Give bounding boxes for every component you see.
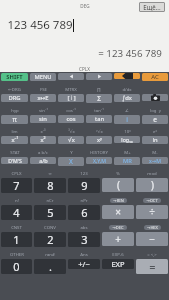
staticText: x↔E <box>37 94 49 102</box>
button[interactable]: Σ <box>86 94 112 103</box>
staticText: EXP <box>111 259 125 269</box>
staticText: →HEX <box>147 225 158 230</box>
button[interactable]: 9 <box>68 178 100 193</box>
staticText: sin⁻¹ <box>39 107 48 113</box>
button[interactable]: X,Y,M <box>86 157 112 164</box>
button[interactable]: x↔E <box>30 94 56 102</box>
staticText: Ans <box>80 251 88 257</box>
button[interactable]: ln <box>142 136 168 144</box>
button[interactable]: 2 <box>34 232 66 247</box>
staticText: MTRX <box>65 86 77 92</box>
button[interactable]: π <box>1 115 28 124</box>
button[interactable]: x⁻¹ <box>1 136 28 144</box>
staticText: HISTORY <box>90 149 108 155</box>
button[interactable]: log₁₀ <box>114 136 140 143</box>
button[interactable]: tan <box>86 115 112 123</box>
staticText: + <box>115 232 121 246</box>
button[interactable]: 5 <box>34 205 66 220</box>
staticText: cos⁻¹ <box>66 107 76 113</box>
button[interactable]: 7 <box>1 178 32 193</box>
staticText: d/dx <box>122 86 132 92</box>
staticText: CPLX <box>79 66 90 72</box>
staticText: x→M <box>149 157 161 164</box>
button[interactable]: x² <box>30 136 56 144</box>
staticText: lim <box>11 128 18 134</box>
button[interactable]: ∫dx <box>114 94 140 102</box>
staticText: 4 <box>13 205 20 220</box>
button[interactable]: Cursor left <box>58 73 84 80</box>
staticText: M+ <box>124 149 131 155</box>
button[interactable]: MR <box>114 157 140 165</box>
button[interactable]: 1 <box>1 232 32 247</box>
button[interactable]: 0 <box>1 259 32 274</box>
staticText: STAT <box>10 149 20 155</box>
staticText: x⁻³ <box>40 128 46 134</box>
button[interactable]: 6 <box>68 205 100 220</box>
staticText: ∠ <box>125 108 129 113</box>
staticText: xʸ <box>97 136 102 144</box>
button[interactable]: ( <box>102 178 134 192</box>
button[interactable]: MENU <box>30 73 56 81</box>
button[interactable]: Camera <box>142 94 168 101</box>
staticText: π <box>12 115 17 124</box>
staticText: eˣ <box>153 128 157 134</box>
button[interactable]: AC <box>142 73 168 81</box>
staticText: × <box>115 205 121 219</box>
button[interactable]: − <box>136 232 168 246</box>
staticText: ( <box>117 178 120 192</box>
button[interactable]: ) <box>136 178 168 192</box>
staticText: 10ˣ <box>124 128 131 134</box>
staticText: nPr <box>80 197 88 203</box>
button[interactable]: i <box>114 115 140 124</box>
button[interactable]: xʸ <box>86 136 112 144</box>
staticText: MR <box>123 157 132 165</box>
staticText: 3 <box>81 232 88 247</box>
staticText: ³√x <box>68 128 75 134</box>
button[interactable]: DRG <box>1 94 28 102</box>
staticText: Σ <box>97 94 101 103</box>
staticText: SHIFT <box>6 73 23 81</box>
button[interactable]: e <box>142 115 168 124</box>
staticText: 8 <box>47 178 54 193</box>
staticText: Y <box>70 149 73 155</box>
button[interactable]: SHIFT <box>1 73 28 81</box>
button[interactable]: x→M <box>142 157 168 164</box>
staticText: X,Y,M <box>93 157 106 164</box>
staticText: − <box>149 232 155 246</box>
button[interactable]: √x <box>58 136 84 144</box>
staticText: CONV <box>44 224 56 230</box>
button[interactable]: cos <box>58 115 84 123</box>
button[interactable]: 3 <box>68 232 100 247</box>
staticText: 7 <box>13 178 20 193</box>
staticText: = <,> <box>147 251 157 257</box>
button[interactable]: = <box>136 259 168 274</box>
staticText: . <box>49 259 52 274</box>
button[interactable]: Cursor right <box>86 73 112 80</box>
button[interactable]: X <box>58 157 84 166</box>
button[interactable]: +/− <box>68 259 100 269</box>
staticText: ∞ <box>48 171 52 176</box>
button[interactable]: D'M'S <box>1 157 28 164</box>
staticText: a b/c <box>38 149 48 155</box>
staticText: ) <box>151 178 154 192</box>
button[interactable]: a/b <box>30 157 56 164</box>
button[interactable]: + <box>102 232 134 246</box>
button[interactable]: Backspace <box>114 73 140 79</box>
button[interactable]: . <box>34 259 66 274</box>
staticText: AC <box>151 73 159 81</box>
staticText: cos <box>66 115 76 123</box>
button[interactable]: 4 <box>1 205 32 220</box>
button[interactable]: sin <box>30 115 56 123</box>
button[interactable]: × <box>102 205 134 219</box>
button[interactable]: Ещё... <box>139 2 165 12</box>
staticText: hyp <box>11 107 19 113</box>
staticText: X <box>69 157 73 166</box>
button[interactable]: EXP <box>102 259 134 269</box>
button[interactable]: ÷ <box>136 205 168 219</box>
staticText: i <box>126 115 128 124</box>
button[interactable]: [ ⦙ ] <box>58 94 84 102</box>
staticText: MENU <box>34 73 52 81</box>
staticText: nCr <box>46 197 54 203</box>
staticText: = <box>149 259 156 274</box>
button[interactable]: 8 <box>34 178 66 193</box>
